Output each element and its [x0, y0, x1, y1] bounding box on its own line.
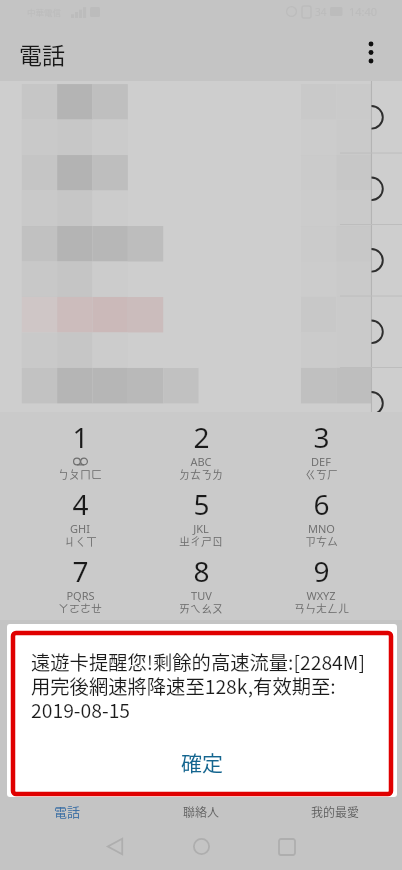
- staticText: ㄚㄛㄜㄝ: [58, 600, 102, 616]
- staticText: ㄅㄆㄇㄈ: [58, 466, 102, 482]
- staticText: 3: [313, 418, 330, 456]
- button[interactable]: Call log entry: [0, 369, 402, 412]
- staticText: ㄓㄔㄕㄖ: [179, 533, 223, 549]
- staticText: 聯絡人: [183, 803, 220, 820]
- staticText: 9: [313, 552, 330, 590]
- button[interactable]: 我的最愛: [268, 797, 402, 828]
- staticText: TUV: [191, 588, 212, 603]
- button[interactable]: Call log entry: [0, 153, 402, 225]
- button[interactable]: More options: [344, 25, 398, 79]
- button[interactable]: 4: [22, 481, 138, 547]
- staticText: 確定: [181, 747, 223, 777]
- staticText: 遠遊卡提醒您!剩餘的高速流量:[2284M] 用完後網速將降速至128k,有效期…: [31, 648, 366, 724]
- staticText: MNO: [308, 521, 335, 536]
- staticText: 我的最愛: [311, 803, 360, 820]
- button[interactable]: 1: [22, 414, 138, 480]
- button[interactable]: Call log entry: [0, 225, 402, 297]
- button[interactable]: Call log entry: [0, 81, 402, 153]
- staticText: 2: [193, 418, 210, 456]
- staticText: 5: [193, 485, 210, 523]
- staticText: ㄐㄑㄒ: [64, 533, 97, 549]
- staticText: ㄗㄘㄙ: [305, 533, 338, 549]
- staticText: PQRS: [66, 588, 95, 603]
- staticText: WXYZ: [306, 588, 336, 603]
- button[interactable]: 電話: [0, 797, 134, 828]
- staticText: 8: [193, 552, 210, 590]
- button[interactable]: 8: [143, 548, 259, 614]
- button[interactable]: 2: [143, 414, 259, 480]
- button[interactable]: 9: [263, 548, 379, 614]
- button[interactable]: 3: [263, 414, 379, 480]
- staticText: ㄉㄊㄋㄌ: [179, 466, 223, 482]
- button[interactable]: Home: [180, 828, 222, 865]
- button[interactable]: Back: [94, 828, 136, 865]
- staticText: ㄢㄣㄤㄥㄦ: [294, 600, 349, 616]
- staticText: 電話: [54, 802, 81, 821]
- staticText: 4: [72, 485, 89, 523]
- button[interactable]: Call log entry: [0, 297, 402, 369]
- staticText: ㄍㄎㄏ: [305, 466, 338, 482]
- button[interactable]: 聯絡人: [134, 797, 268, 828]
- staticText: JKL: [193, 521, 209, 536]
- staticText: ABC: [190, 454, 212, 469]
- staticText: 1: [72, 418, 89, 456]
- button[interactable]: 6: [263, 481, 379, 547]
- staticText: GHI: [70, 521, 90, 536]
- staticText: 6: [313, 485, 330, 523]
- button[interactable]: 5: [143, 481, 259, 547]
- staticText: 7: [72, 552, 89, 590]
- button[interactable]: 7: [22, 548, 138, 614]
- staticText: DEF: [311, 454, 331, 469]
- button[interactable]: Recent apps: [266, 828, 308, 865]
- staticText: ㄞㄟㄠㄡ: [179, 600, 223, 616]
- button[interactable]: 確定: [7, 738, 397, 786]
- staticText: 電話: [19, 37, 65, 70]
